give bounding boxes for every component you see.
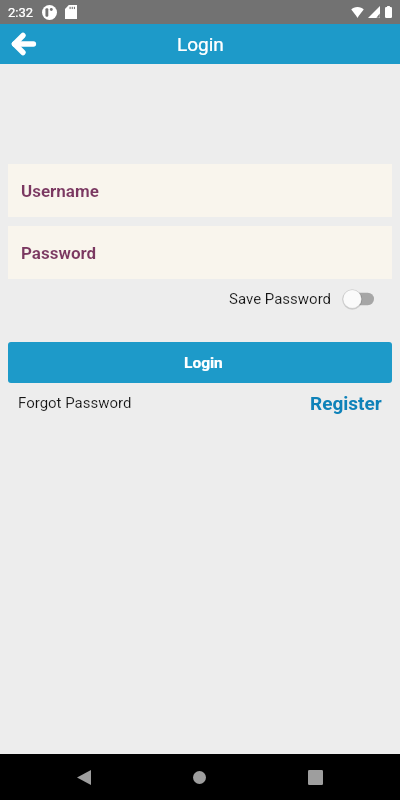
staticText: Save Password xyxy=(229,290,332,308)
button[interactable]: Forgot Password xyxy=(18,394,132,412)
staticText: Register xyxy=(310,392,382,414)
button[interactable]: Register xyxy=(310,392,382,414)
staticText: Login xyxy=(177,33,224,55)
button[interactable]: Recents xyxy=(293,755,338,800)
button[interactable]: Username xyxy=(8,164,392,217)
staticText: Login xyxy=(184,354,223,372)
button[interactable]: Home xyxy=(177,755,222,800)
button[interactable]: Back xyxy=(7,28,39,60)
button[interactable]: Back xyxy=(61,755,106,800)
button[interactable]: Save Password xyxy=(229,289,374,309)
staticText: 2:32 xyxy=(8,5,34,20)
staticText: Username xyxy=(21,181,99,201)
staticText: Forgot Password xyxy=(18,394,132,412)
staticText: Password xyxy=(21,243,97,263)
button[interactable]: Login xyxy=(8,342,392,383)
button[interactable]: Password xyxy=(8,226,392,279)
